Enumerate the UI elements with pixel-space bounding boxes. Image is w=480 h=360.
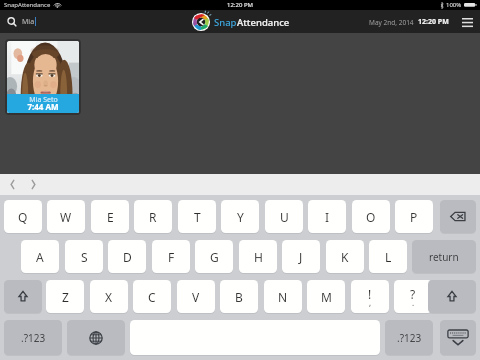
button[interactable]: C: [133, 280, 171, 313]
button[interactable]: Shift: [428, 280, 476, 313]
button[interactable]: Mia Seto: [7, 41, 79, 113]
staticText: Mia Seto: [29, 95, 58, 105]
button[interactable]: K: [326, 240, 364, 273]
button[interactable]: E: [91, 200, 129, 233]
button[interactable]: Z: [46, 280, 84, 313]
button[interactable]: X: [90, 280, 128, 313]
staticText: 100%: [446, 1, 462, 9]
button[interactable]: H: [239, 240, 277, 273]
staticText: Z: [62, 289, 69, 305]
button[interactable]: Menu: [458, 13, 476, 31]
staticText: P: [410, 209, 418, 225]
staticText: T: [194, 209, 201, 225]
button[interactable]: Shift: [4, 280, 42, 313]
button[interactable]: W: [47, 200, 85, 233]
staticText: W: [60, 209, 72, 225]
staticText: L: [385, 249, 392, 265]
staticText: R: [149, 209, 157, 225]
button[interactable]: N: [264, 280, 302, 313]
staticText: .?123: [21, 331, 46, 345]
button[interactable]: Backspace: [440, 200, 476, 233]
button[interactable]: Previous: [3, 174, 21, 195]
staticText: Y: [237, 209, 244, 225]
button[interactable]: L: [369, 240, 407, 273]
button[interactable]: P: [395, 200, 433, 233]
staticText: Attendance: [237, 16, 290, 29]
button[interactable]: .?123: [385, 320, 433, 355]
button[interactable]: M: [307, 280, 345, 313]
button[interactable]: S: [65, 240, 103, 273]
staticText: return: [429, 250, 459, 264]
staticText: U: [280, 209, 289, 225]
button[interactable]: V: [177, 280, 215, 313]
staticText: .: [412, 297, 415, 308]
button[interactable]: U: [265, 200, 303, 233]
staticText: O: [366, 209, 376, 225]
staticText: M: [321, 289, 332, 305]
staticText: X: [105, 289, 113, 305]
staticText: V: [192, 289, 200, 305]
staticText: E: [107, 209, 114, 225]
button[interactable]: D: [108, 240, 146, 273]
button[interactable]: Y: [221, 200, 259, 233]
staticText: A: [36, 249, 44, 265]
staticText: N: [278, 289, 288, 305]
staticText: 12:20 PM: [418, 17, 449, 27]
button[interactable]: ?: [394, 280, 432, 313]
staticText: K: [341, 249, 349, 265]
staticText: 12:20 PM: [227, 1, 253, 9]
staticText: S: [81, 249, 88, 265]
staticText: C: [148, 289, 156, 305]
staticText: I: [325, 209, 330, 225]
button[interactable]: A: [21, 240, 59, 273]
staticText: J: [299, 249, 303, 265]
button[interactable]: O: [352, 200, 390, 233]
button[interactable]: Q: [4, 200, 42, 233]
staticText: ?: [410, 286, 416, 302]
staticText: G: [210, 249, 219, 265]
button[interactable]: G: [195, 240, 233, 273]
staticText: !: [368, 286, 372, 302]
button[interactable]: Change keyboard language: [67, 320, 125, 355]
staticText: 7:44 AM: [27, 101, 59, 112]
button[interactable]: Search students: [0, 10, 150, 33]
staticText: B: [235, 289, 243, 305]
button[interactable]: .?123: [4, 320, 62, 355]
button[interactable]: return: [412, 240, 476, 273]
staticText: May 2nd, 2014: [369, 18, 414, 27]
button[interactable]: Next: [24, 174, 42, 195]
button[interactable]: Hide keyboard: [440, 320, 476, 355]
button[interactable]: B: [220, 280, 258, 313]
button[interactable]: R: [134, 200, 172, 233]
staticText: H: [254, 249, 263, 265]
button[interactable]: J: [282, 240, 320, 273]
staticText: D: [123, 249, 132, 265]
button[interactable]: I: [308, 200, 346, 233]
staticText: Mia: [22, 17, 35, 27]
staticText: F: [168, 249, 175, 265]
button[interactable]: T: [178, 200, 216, 233]
button[interactable]: F: [152, 240, 190, 273]
button[interactable]: !: [351, 280, 389, 313]
staticText: Snap: [214, 16, 237, 29]
staticText: Q: [18, 209, 28, 225]
staticText: SnapAttendance: [4, 1, 51, 9]
staticText: .?123: [397, 331, 422, 345]
staticText: ,: [369, 297, 372, 308]
